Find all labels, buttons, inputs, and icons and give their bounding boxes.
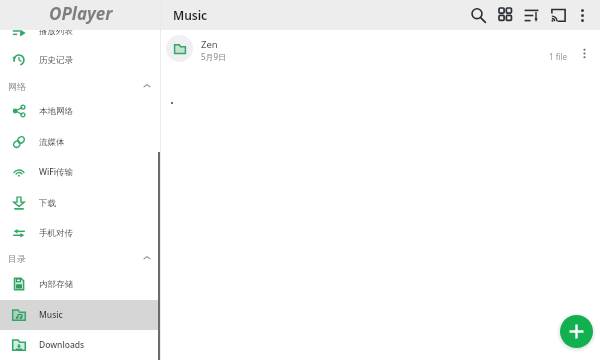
button[interactable]: Downloads — [0, 330, 161, 360]
staticText: Music — [39, 309, 63, 321]
staticText: 播放列表 — [39, 30, 73, 37]
staticText: 目录 — [8, 253, 26, 264]
button[interactable]: Zen — [161, 30, 600, 67]
staticText: 历史记录 — [39, 55, 73, 66]
button[interactable]: More options — [569, 2, 595, 28]
button[interactable]: 目录 — [0, 245, 161, 271]
staticText: OPlayer — [49, 2, 113, 25]
staticText: 手机对传 — [39, 228, 73, 239]
button[interactable]: 流媒体 — [0, 127, 161, 157]
button[interactable]: 手机对传 — [0, 218, 161, 248]
button[interactable]: Grid view — [493, 2, 519, 28]
staticText: 下载 — [39, 198, 56, 209]
staticText: 1 file — [549, 51, 568, 62]
button[interactable]: Music — [0, 300, 161, 330]
button[interactable]: Add — [560, 315, 593, 348]
button[interactable]: Cast — [545, 2, 571, 28]
staticText: 网络 — [8, 81, 26, 92]
button[interactable]: WiFi传输 — [0, 157, 161, 187]
staticText: 内部存储 — [39, 279, 73, 290]
staticText: Downloads — [39, 339, 85, 351]
staticText: Zen — [201, 38, 218, 51]
button[interactable]: 内部存储 — [0, 269, 161, 299]
button[interactable]: Search — [465, 2, 491, 28]
staticText: Music — [173, 7, 208, 23]
staticText: 5月9日 — [201, 51, 227, 62]
button[interactable]: 历史记录 — [0, 45, 161, 75]
button[interactable]: More options — [573, 42, 595, 64]
button[interactable]: Sort — [518, 2, 544, 28]
button[interactable]: 播放列表 — [0, 30, 161, 46]
staticText: WiFi传输 — [39, 166, 74, 178]
button[interactable]: 本地网络 — [0, 96, 161, 126]
staticText: 本地网络 — [39, 106, 73, 117]
button[interactable]: 下载 — [0, 188, 161, 218]
staticText: 流媒体 — [39, 137, 65, 148]
button[interactable]: 网络 — [0, 73, 161, 99]
